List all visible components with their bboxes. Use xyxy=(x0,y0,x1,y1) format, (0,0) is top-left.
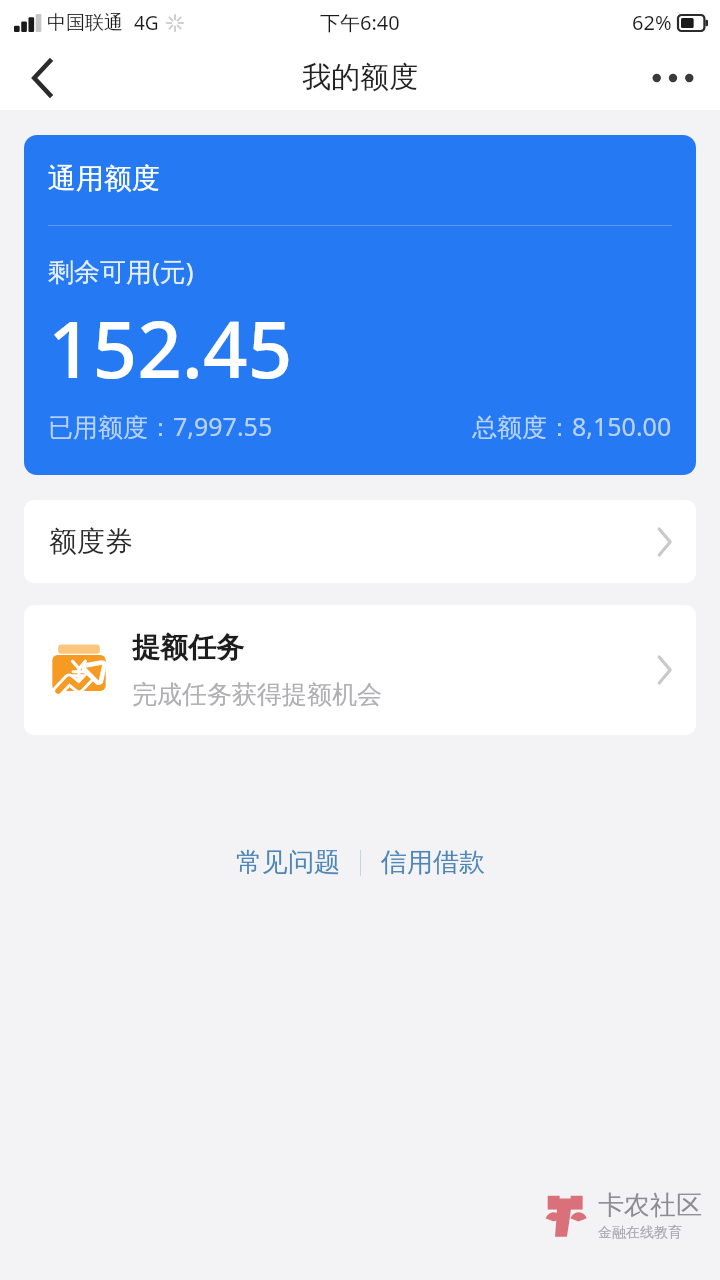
staticText: 我的额度 xyxy=(302,59,418,96)
staticText: 完成任务获得提额机会 xyxy=(132,679,382,710)
button[interactable]: Back xyxy=(12,47,74,109)
button[interactable]: More options xyxy=(642,47,704,109)
staticText: 信用借款 xyxy=(381,846,485,879)
staticText: 通用额度 xyxy=(48,161,160,196)
staticText: 提额任务 xyxy=(132,630,244,665)
button[interactable]: 额度券 xyxy=(24,500,696,583)
staticText: 总额度：8,150.00 xyxy=(472,409,672,443)
staticText: 金融在线教育 xyxy=(598,1224,682,1242)
staticText: 已用额度：7,997.55 xyxy=(48,409,273,443)
button[interactable]: 提额任务 xyxy=(24,605,696,735)
staticText: 4G xyxy=(134,10,159,36)
staticText: 62% xyxy=(632,9,672,36)
staticText: 卡农社区 xyxy=(598,1189,702,1222)
staticText: 152.45 xyxy=(48,295,293,401)
button[interactable]: 通用额度 xyxy=(24,135,696,475)
button[interactable]: 信用借款 xyxy=(371,840,495,885)
staticText: 下午6:40 xyxy=(320,9,400,36)
staticText: 中国联通 xyxy=(47,11,123,35)
staticText: 额度券 xyxy=(49,524,133,559)
staticText: 常见问题 xyxy=(236,846,340,879)
button[interactable]: 常见问题 xyxy=(226,840,350,885)
staticText: 剩余可用(元) xyxy=(48,253,194,289)
